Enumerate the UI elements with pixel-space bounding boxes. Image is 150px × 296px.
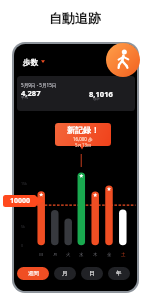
staticText: 4,287 <box>21 88 41 98</box>
staticText: 月 <box>62 270 68 277</box>
staticText: 5k <box>21 224 25 229</box>
staticText: 5月9日 - 5月15日 <box>21 82 57 88</box>
staticText: 16,000 歩 <box>73 136 93 142</box>
staticText: 水 <box>79 252 84 258</box>
staticText: 平均 <box>21 96 29 101</box>
staticText: 合計 <box>93 97 101 102</box>
button[interactable]: 歩数 <box>23 58 45 67</box>
button[interactable]: 年 <box>108 267 130 280</box>
staticText: 火 <box>66 252 71 258</box>
button[interactable]: 10000 <box>3 195 44 207</box>
staticText: 日 <box>89 270 95 277</box>
button[interactable]: 日 <box>81 267 103 280</box>
staticText: 15k <box>21 181 28 186</box>
button[interactable]: Walking activity <box>106 43 140 77</box>
staticText: 歩数 <box>23 58 38 67</box>
staticText: 自動追跡 <box>49 10 101 26</box>
staticText: 10000 <box>10 196 31 206</box>
staticText: 月 <box>53 252 58 258</box>
staticText: 新記録！ <box>67 125 99 135</box>
button[interactable]: 月 <box>54 267 76 280</box>
staticText: 週間 <box>28 270 39 277</box>
button[interactable]: 新記録！ <box>55 123 111 150</box>
button[interactable]: 5月9日 - 5月15日 <box>17 76 135 111</box>
staticText: 0 <box>21 243 24 248</box>
staticText: 木 <box>93 252 98 258</box>
staticText: 年 <box>116 270 122 277</box>
staticText: 5月13日 <box>75 142 92 148</box>
staticText: 金 <box>107 252 112 258</box>
button[interactable]: 週間 <box>17 267 49 280</box>
staticText: 8,1016 <box>89 89 113 99</box>
staticText: 日 <box>39 252 44 258</box>
staticText: 土 <box>121 252 126 258</box>
